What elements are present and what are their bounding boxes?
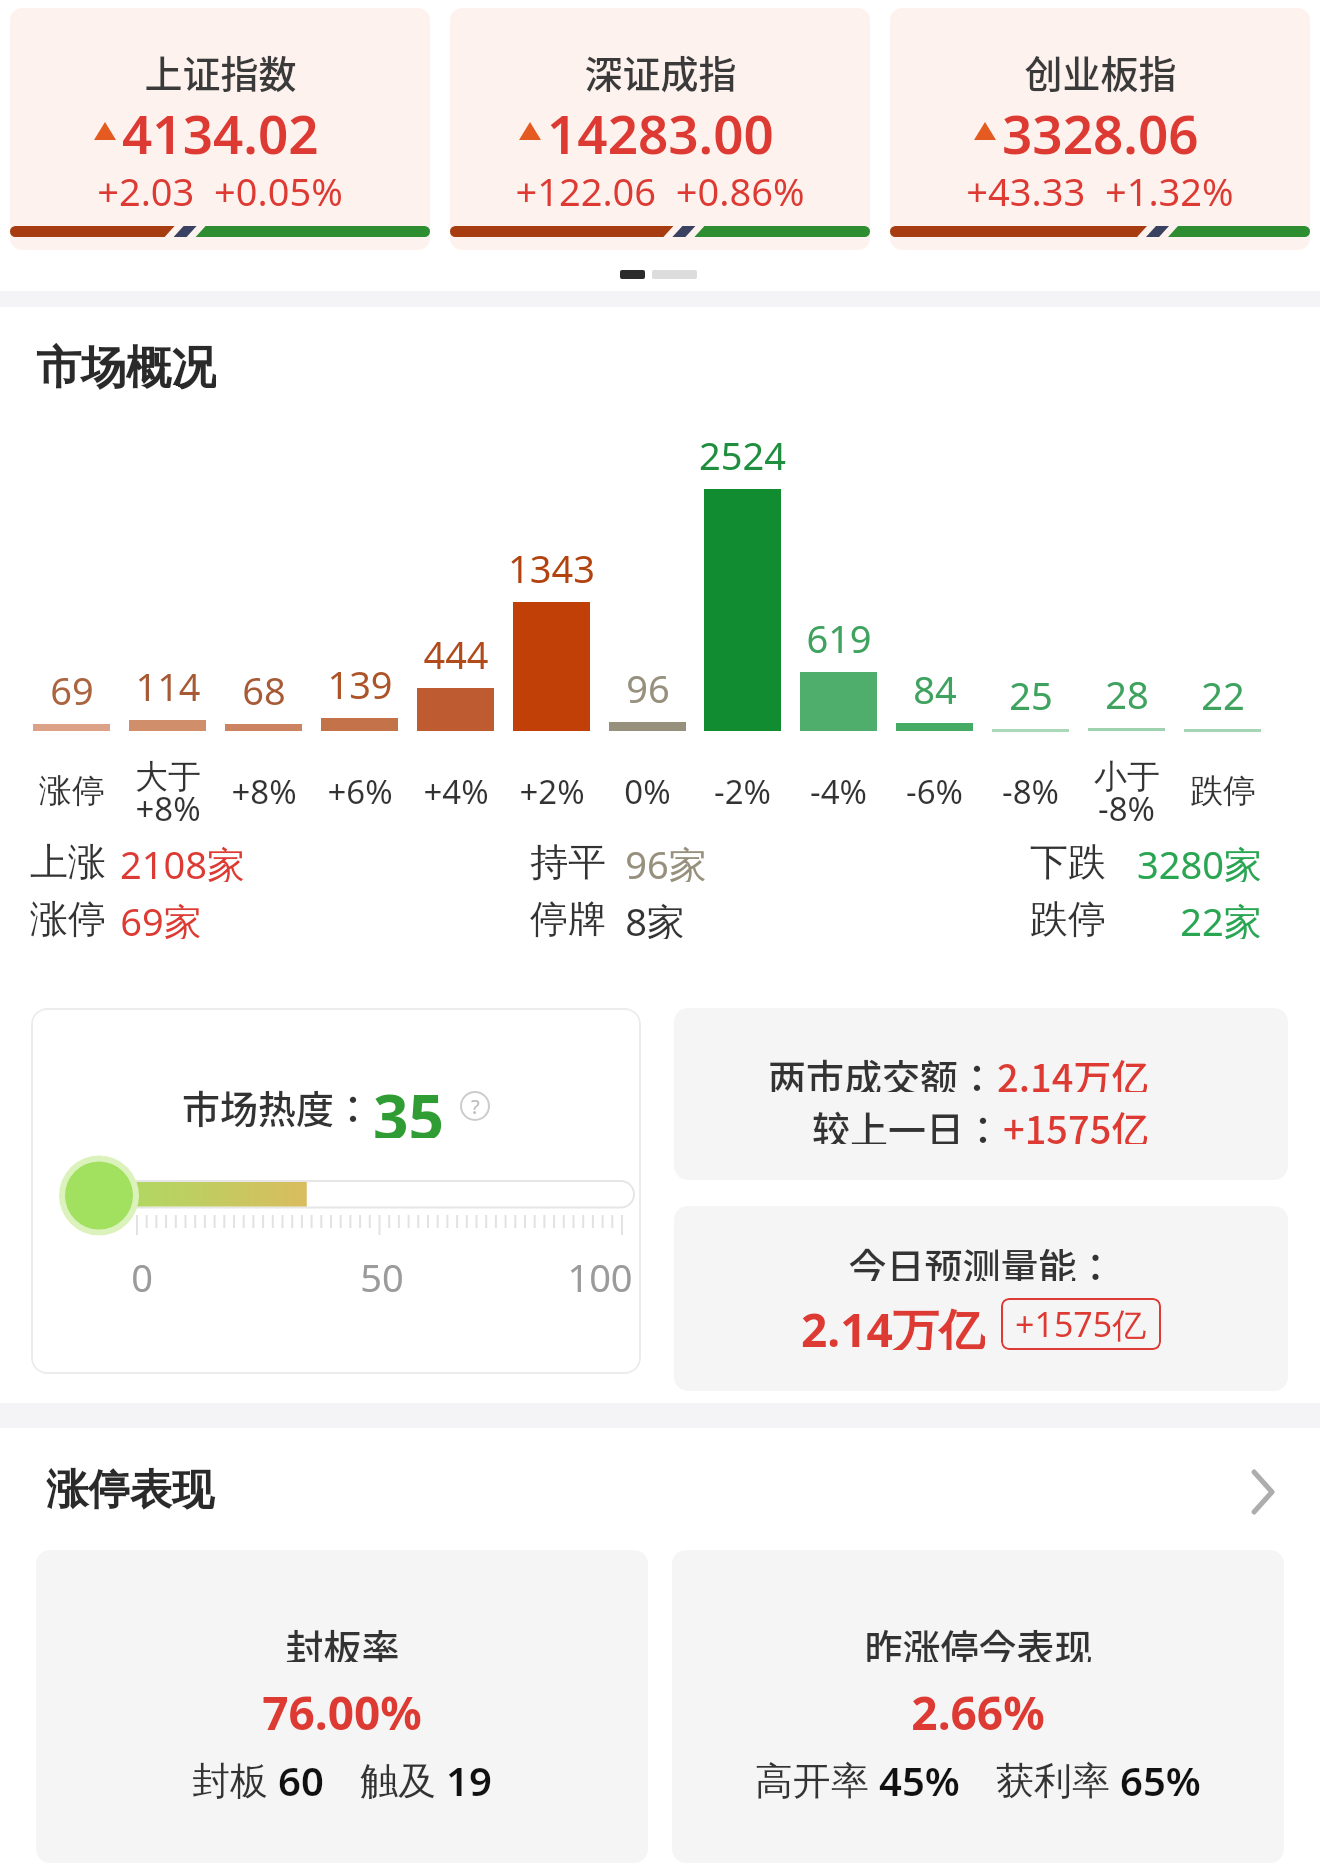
staticText: +2% (519, 769, 585, 813)
staticText: 较上一日： (812, 1100, 1003, 1144)
staticText: 14283.00 (547, 97, 774, 165)
staticText: 84 (913, 663, 957, 707)
staticText: 今日预测量能： (848, 1237, 1115, 1281)
staticText: +8% (135, 786, 201, 830)
button[interactable]: 市场热度： (31, 1008, 641, 1374)
staticText: 19 (446, 1753, 492, 1801)
staticText: 市场热度： (182, 1079, 373, 1134)
staticText: 停牌 (530, 895, 606, 939)
staticText: 76.00% (262, 1681, 422, 1733)
staticText: +2.03 +0.05% (97, 165, 343, 215)
staticText: -8% (1002, 769, 1059, 813)
staticText: 两市成交额： (768, 1048, 997, 1092)
staticText: +122.06 +0.86% (515, 165, 805, 215)
staticText: 65% (1120, 1753, 1201, 1801)
staticText: 上涨 (30, 838, 106, 882)
staticText: 跌停 (1030, 895, 1106, 939)
staticText: 跌停 (1190, 770, 1256, 812)
staticText: 大于 (135, 756, 201, 798)
button[interactable]: 深证成指 (450, 8, 870, 250)
staticText: 50 (360, 1251, 404, 1295)
staticText: 1343 (508, 542, 595, 586)
staticText: -4% (810, 769, 867, 813)
staticText: 市场概况 (36, 340, 216, 396)
button[interactable]: 上证指数 (10, 8, 430, 250)
staticText: 0% (624, 769, 671, 813)
button[interactable]: 封板率 (36, 1550, 648, 1863)
staticText: +8% (231, 769, 297, 813)
staticText: 139 (327, 658, 393, 702)
staticText: 35 (373, 1074, 444, 1138)
staticText: 100 (567, 1251, 633, 1295)
staticText: 2.66% (911, 1681, 1045, 1733)
staticText: 昨涨停今表现 (864, 1618, 1093, 1662)
staticText: +1575亿 (1003, 1100, 1150, 1144)
button[interactable]: 今日预测量能： (674, 1206, 1288, 1391)
button[interactable]: 昨涨停今表现 (672, 1550, 1284, 1863)
staticText: 60 (278, 1753, 324, 1801)
staticText: +6% (327, 769, 393, 813)
staticText: ? (471, 1093, 480, 1120)
staticText: -6% (906, 769, 963, 813)
staticText: 下跌 (1030, 838, 1106, 882)
staticText: 25 (1009, 669, 1053, 713)
staticText: +4% (423, 769, 489, 813)
staticText: +1575亿 (1015, 1301, 1147, 1347)
staticText: 触及 (360, 1753, 446, 1801)
staticText: 3328.06 (1002, 97, 1199, 165)
staticText: 2108家 (120, 838, 245, 882)
button[interactable] (1246, 1470, 1282, 1514)
staticText: 小于 (1094, 756, 1160, 798)
staticText: +43.33 +1.32% (966, 165, 1234, 215)
staticText: 持平 (530, 838, 606, 882)
staticText: 创业板指 (1024, 44, 1177, 96)
staticText: 4134.02 (122, 97, 319, 165)
staticText: 2.14万亿 (997, 1048, 1150, 1092)
staticText: 8家 (625, 895, 685, 939)
staticText: 涨停 (30, 895, 106, 939)
staticText: 涨停 (39, 770, 105, 812)
staticText: 114 (135, 660, 201, 704)
staticText: 45% (879, 1753, 960, 1801)
staticText: 28 (1105, 668, 1149, 712)
staticText: 619 (806, 612, 872, 656)
button[interactable]: 创业板指 (890, 8, 1310, 250)
staticText: 2.14万亿 (801, 1298, 985, 1350)
staticText: 96 (626, 662, 670, 706)
staticText: 3280家 (1137, 838, 1262, 882)
button[interactable]: 两市成交额： (674, 1008, 1288, 1180)
staticText: -8% (1098, 786, 1155, 830)
staticText: -2% (714, 769, 771, 813)
staticText: 69家 (120, 895, 202, 939)
staticText: 22家 (1180, 895, 1262, 939)
staticText: 22 (1201, 669, 1245, 713)
staticText: 涨停表现 (46, 1464, 214, 1517)
staticText: 封板率 (285, 1618, 400, 1662)
staticText: 0 (131, 1251, 153, 1295)
staticText: 深证成指 (584, 44, 737, 96)
staticText: 高开率 (755, 1753, 879, 1801)
staticText: 69 (50, 664, 94, 708)
staticText: 上证指数 (144, 44, 297, 96)
staticText: 封板 (192, 1753, 278, 1801)
staticText: 96家 (625, 838, 707, 882)
staticText: 444 (423, 628, 489, 672)
staticText: 获利率 (996, 1753, 1120, 1801)
staticText: 2524 (699, 429, 786, 473)
staticText: 68 (242, 664, 286, 708)
